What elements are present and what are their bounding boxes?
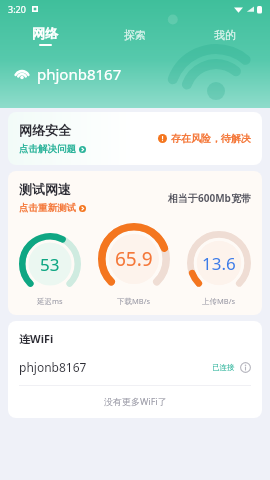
staticText: 上传MB/s bbox=[202, 296, 236, 306]
button[interactable]: 我的 bbox=[180, 18, 270, 52]
staticText: 点击解决问题 bbox=[19, 143, 76, 155]
staticText: 相当于600Mb宽带 bbox=[168, 191, 251, 205]
staticText: 3:20 bbox=[8, 3, 26, 15]
staticText: 网络 bbox=[32, 25, 58, 41]
staticText: 探索 bbox=[124, 28, 146, 42]
staticText: 我的 bbox=[214, 28, 236, 42]
staticText: 已连接 bbox=[212, 363, 235, 372]
staticText: 网络安全 bbox=[19, 122, 71, 138]
staticText: 测试网速 bbox=[19, 181, 71, 197]
staticText: 53 bbox=[40, 253, 60, 276]
button[interactable]: 测试网速 bbox=[8, 171, 262, 315]
staticText: 点击重新测试 bbox=[19, 202, 76, 214]
button[interactable]: phjonb8167 bbox=[19, 356, 251, 378]
staticText: phjonb8167 bbox=[19, 359, 87, 375]
staticText: 连WiFi bbox=[19, 331, 54, 346]
button[interactable]: 网络详情 bbox=[240, 362, 251, 373]
staticText: 没有更多WiFi了 bbox=[104, 395, 167, 407]
staticText: 下载MB/s bbox=[117, 296, 151, 306]
staticText: phjonb8167 bbox=[37, 64, 122, 84]
staticText: 存在风险，待解决 bbox=[171, 132, 251, 145]
staticText: 延迟ms bbox=[37, 296, 63, 306]
staticText: 13.6 bbox=[202, 252, 236, 275]
button[interactable]: 网络 bbox=[0, 18, 90, 52]
button[interactable]: 探索 bbox=[90, 18, 180, 52]
staticText: 65.9 bbox=[115, 246, 153, 272]
button[interactable]: 网络安全 bbox=[8, 112, 262, 165]
